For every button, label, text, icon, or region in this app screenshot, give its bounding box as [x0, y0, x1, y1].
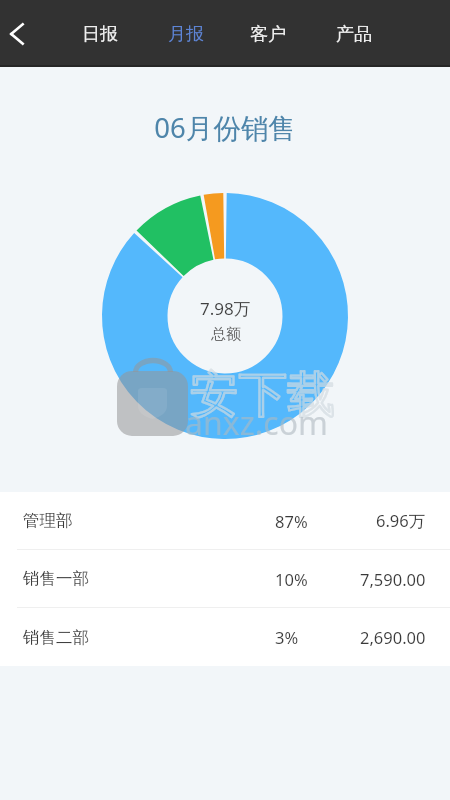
staticText: 3% [275, 626, 299, 648]
staticText: 管理部 [23, 510, 73, 531]
button[interactable]: 月报 [156, 0, 216, 67]
button[interactable]: 销售一部 [0, 550, 450, 608]
staticText: 产品 [336, 23, 372, 46]
staticText: 月报 [168, 23, 204, 46]
button[interactable]: 客户 [238, 0, 298, 67]
staticText: 销售一部 [23, 568, 89, 589]
button[interactable]: Back [0, 0, 44, 67]
button[interactable]: 日报 [70, 0, 130, 67]
button[interactable]: 产品 [324, 0, 384, 67]
staticText: 总额 [211, 325, 241, 344]
staticText: 87% [275, 510, 308, 532]
button[interactable]: 管理部 [0, 492, 450, 550]
staticText: 10% [275, 568, 308, 590]
staticText: 6.96万 [376, 509, 426, 532]
staticText: 7.98万 [200, 297, 251, 320]
staticText: 06月份销售 [0, 109, 450, 147]
staticText: 销售二部 [23, 627, 89, 648]
staticText: 客户 [250, 23, 286, 46]
staticText: 7,590.00 [360, 568, 426, 590]
staticText: anxz.com [185, 401, 328, 445]
staticText: 2,690.00 [360, 626, 426, 648]
button[interactable]: 销售二部 [0, 608, 450, 666]
staticText: 安下载 [190, 364, 336, 425]
staticText: 日报 [82, 23, 118, 46]
